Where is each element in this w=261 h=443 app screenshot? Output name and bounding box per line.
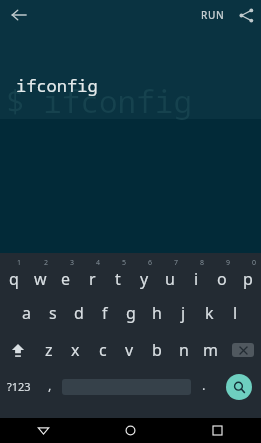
staticText: y [140,268,149,290]
staticText: 2 [44,258,49,268]
button[interactable]: c [89,331,116,368]
staticText: 1 [17,258,22,268]
staticText: p [243,268,253,290]
staticText: 9 [226,258,231,268]
staticText: k [205,302,214,324]
button[interactable]: 2 [27,257,53,294]
staticText: c [99,339,107,361]
button[interactable]: Backspace [224,331,261,368]
button[interactable]: l [222,294,248,331]
button[interactable]: 4 [79,257,105,294]
staticText: 4 [96,258,101,268]
staticText: i [194,268,199,290]
staticText: g [126,302,136,324]
staticText: 0 [252,258,257,268]
staticText: n [179,339,189,361]
staticText: q [9,268,19,290]
button[interactable]: 8 [183,257,209,294]
staticText: u [165,268,175,290]
staticText: 5 [122,258,127,268]
button[interactable]: , [37,368,62,405]
staticText: r [89,268,96,290]
staticText: 3 [70,258,75,268]
button[interactable]: z [36,331,62,368]
staticText: t [115,268,121,290]
button[interactable]: s [40,294,66,331]
staticText: w [34,268,47,290]
button[interactable]: 0 [235,257,261,294]
staticText: j [181,302,186,324]
staticText: ifconfig [16,74,98,97]
staticText: . [202,376,206,394]
staticText: b [152,339,162,361]
button[interactable]: RUN [195,0,231,30]
button[interactable]: h [144,294,170,331]
staticText: f [102,302,108,324]
button[interactable]: n [170,331,197,368]
staticText: , [48,376,52,394]
button[interactable]: Back [0,0,38,30]
button[interactable]: ?123 [0,368,37,405]
staticText: d [74,302,84,324]
staticText: v [125,339,134,361]
staticText: RUN [201,8,225,22]
button[interactable]: . [191,368,216,405]
staticText: o [217,268,227,290]
staticText: 6 [148,258,153,268]
button[interactable]: b [143,331,170,368]
button[interactable]: x [62,331,89,368]
button[interactable]: Space [62,368,191,405]
staticText: $ ifconfig [6,80,192,122]
staticText: 7 [174,258,179,268]
staticText: l [233,302,238,324]
button[interactable]: 6 [131,257,157,294]
button[interactable]: 9 [209,257,235,294]
button[interactable]: 5 [105,257,131,294]
staticText: ?123 [7,379,31,394]
button[interactable]: Shift [0,331,36,368]
button[interactable]: k [196,294,222,331]
staticText: x [71,339,80,361]
button[interactable]: m [197,331,224,368]
button[interactable]: Recent apps [174,418,261,443]
staticText: e [61,268,71,290]
staticText: h [152,302,162,324]
button[interactable]: 3 [53,257,79,294]
button[interactable]: d [66,294,92,331]
button[interactable]: Home [87,418,174,443]
button[interactable]: 7 [157,257,183,294]
button[interactable]: j [170,294,196,331]
button[interactable]: a [13,294,40,331]
staticText: m [203,339,218,361]
button[interactable]: g [118,294,144,331]
staticText: 8 [200,258,205,268]
button[interactable]: Back [0,418,87,443]
staticText: s [49,302,57,324]
button[interactable]: Search [216,368,261,405]
button[interactable]: Share [231,0,261,30]
staticText: a [22,302,31,324]
button[interactable]: v [116,331,143,368]
button[interactable]: f [92,294,118,331]
button[interactable]: 1 [0,257,27,294]
staticText: z [45,339,53,361]
